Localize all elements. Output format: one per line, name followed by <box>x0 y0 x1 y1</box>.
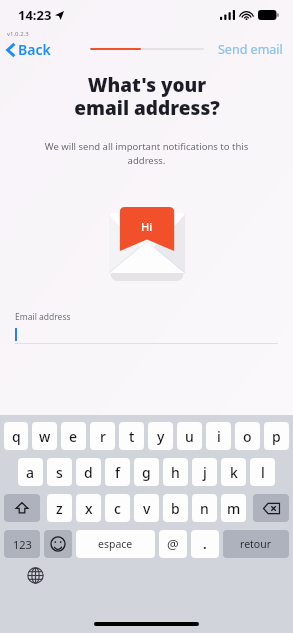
button[interactable]: p <box>264 422 289 450</box>
staticText: e <box>69 427 78 446</box>
staticText: We will send all important notifications… <box>26 140 267 167</box>
button[interactable]: o <box>235 422 260 450</box>
staticText: Back <box>18 40 51 59</box>
button[interactable]: c <box>105 494 130 522</box>
staticText: n <box>200 499 209 518</box>
button[interactable]: l <box>250 458 275 486</box>
button[interactable]: b <box>163 494 188 522</box>
button[interactable]: f <box>105 458 130 486</box>
button[interactable]: u <box>177 422 202 450</box>
button[interactable]: e <box>61 422 86 450</box>
staticText: Send email <box>218 41 283 58</box>
staticText: a <box>26 463 35 482</box>
button[interactable]: k <box>221 458 246 486</box>
staticText: retour <box>240 537 272 551</box>
button[interactable]: retour <box>223 530 289 558</box>
staticText: k <box>230 463 238 482</box>
staticText: . <box>203 535 207 553</box>
staticText: i <box>217 427 221 446</box>
button[interactable]: Emoji <box>44 530 72 558</box>
button[interactable]: y <box>148 422 173 450</box>
button[interactable]: Shift <box>4 494 40 522</box>
button[interactable]: Change keyboard language <box>24 564 46 586</box>
button[interactable]: z <box>47 494 72 522</box>
staticText: g <box>142 463 151 482</box>
staticText: v <box>143 499 151 518</box>
button[interactable]: Back <box>0 38 59 61</box>
button[interactable]: r <box>90 422 115 450</box>
staticText: Email address <box>15 311 71 323</box>
button[interactable]: h <box>163 458 188 486</box>
button[interactable]: t <box>119 422 144 450</box>
staticText: r <box>100 427 106 446</box>
button[interactable]: m <box>221 494 246 522</box>
staticText: m <box>227 499 241 518</box>
staticText: z <box>56 499 63 518</box>
staticText: p <box>272 427 281 446</box>
staticText: b <box>171 499 180 518</box>
button[interactable]: a <box>18 458 43 486</box>
staticText: w <box>39 427 51 446</box>
button[interactable]: d <box>76 458 101 486</box>
button[interactable]: n <box>192 494 217 522</box>
button[interactable]: espace <box>76 530 155 558</box>
button[interactable]: . <box>191 530 219 558</box>
staticText: f <box>115 463 120 482</box>
staticText: d <box>84 463 93 482</box>
button[interactable]: x <box>76 494 101 522</box>
staticText: espace <box>98 537 133 551</box>
staticText: t <box>129 427 135 446</box>
button[interactable]: v <box>134 494 159 522</box>
staticText: o <box>243 427 252 446</box>
staticText: @ <box>167 535 179 553</box>
button[interactable]: g <box>134 458 159 486</box>
staticText: 123 <box>13 537 32 552</box>
button[interactable]: @ <box>159 530 187 558</box>
staticText: 14:23 <box>18 6 52 24</box>
staticText: h <box>171 463 180 482</box>
button[interactable]: q <box>4 422 28 450</box>
button[interactable]: Send email <box>208 38 293 61</box>
staticText: s <box>56 463 63 482</box>
button[interactable]: j <box>192 458 217 486</box>
staticText: c <box>114 499 121 518</box>
staticText: Hi <box>141 219 153 234</box>
staticText: x <box>85 499 93 518</box>
button[interactable]: Numbers <box>4 530 40 558</box>
staticText: v1.0.2.3 <box>7 30 29 38</box>
button[interactable]: i <box>206 422 231 450</box>
button[interactable]: Backspace <box>253 494 289 522</box>
button[interactable]: Email address <box>0 311 293 344</box>
staticText: l <box>261 463 265 482</box>
staticText: y <box>157 427 165 446</box>
staticText: What's your email address? <box>74 72 220 121</box>
button[interactable]: w <box>32 422 57 450</box>
staticText: u <box>185 427 194 446</box>
button[interactable]: s <box>47 458 72 486</box>
staticText: j <box>203 463 207 482</box>
staticText: q <box>12 427 21 446</box>
